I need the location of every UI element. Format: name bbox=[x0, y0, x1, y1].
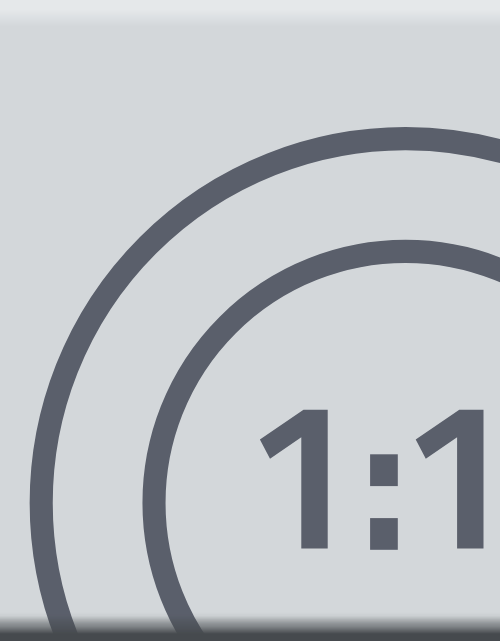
button[interactable]: System navigation bar bbox=[0, 608, 500, 641]
button[interactable]: Timer dial, 1:1 remaining bbox=[0, 0, 500, 641]
